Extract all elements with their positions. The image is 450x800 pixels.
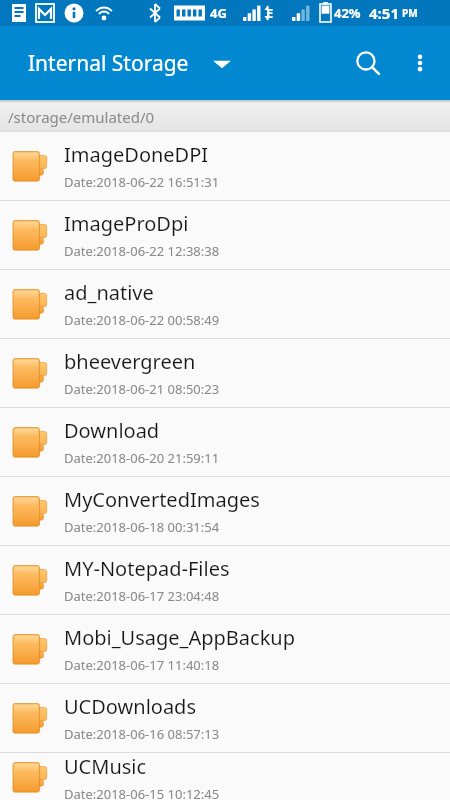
button[interactable]: bheevergreen xyxy=(0,339,450,407)
staticText: Date:2018-06-17 23:04:48 xyxy=(64,587,220,605)
staticText: bheevergreen xyxy=(64,348,196,375)
staticText: Date:2018-06-15 10:12:45 xyxy=(64,785,220,800)
staticText: Date:2018-06-21 08:50:23 xyxy=(64,380,220,398)
staticText: MyConvertedImages xyxy=(64,486,260,513)
staticText: Date:2018-06-18 00:31:54 xyxy=(64,518,220,536)
staticText: E xyxy=(266,4,274,22)
button[interactable]: Download xyxy=(0,408,450,476)
button[interactable]: ad_native xyxy=(0,270,450,338)
button[interactable]: More options xyxy=(394,37,446,89)
staticText: Download xyxy=(64,417,160,444)
staticText: Date:2018-06-22 00:58:49 xyxy=(64,311,220,329)
staticText: Internal Storage xyxy=(28,49,189,78)
button[interactable]: MY-Notepad-Files xyxy=(0,546,450,614)
staticText: MY-Notepad-Files xyxy=(64,555,230,582)
staticText: Date:2018-06-22 12:38:38 xyxy=(64,242,220,260)
staticText: Date:2018-06-17 11:40:18 xyxy=(64,656,220,674)
staticText: ImageProDpi xyxy=(64,210,189,237)
button[interactable]: ImageProDpi xyxy=(0,201,450,269)
staticText: Date:2018-06-20 21:59:11 xyxy=(64,449,220,467)
button[interactable]: MyConvertedImages xyxy=(0,477,450,545)
button[interactable]: ImageDoneDPI xyxy=(0,132,450,200)
staticText: 4:51 xyxy=(369,3,399,23)
staticText: PM xyxy=(402,6,418,20)
staticText: 42% xyxy=(334,4,361,22)
staticText: Date:2018-06-22 16:51:31 xyxy=(64,173,220,191)
staticText: 4G xyxy=(210,4,227,22)
staticText: UCDownloads xyxy=(64,693,196,720)
staticText: UCMusic xyxy=(64,753,147,780)
button[interactable]: UCDownloads xyxy=(0,684,450,752)
button[interactable]: /storage/emulated/0 xyxy=(0,100,450,131)
button[interactable]: UCMusic xyxy=(0,753,450,800)
button[interactable]: Internal Storage xyxy=(0,41,245,86)
staticText: /storage/emulated/0 xyxy=(8,107,155,127)
staticText: Date:2018-06-16 08:57:13 xyxy=(64,725,220,743)
staticText: ImageDoneDPI xyxy=(64,141,209,168)
staticText: Mobi_Usage_AppBackup xyxy=(64,624,295,651)
staticText: ad_native xyxy=(64,279,154,306)
button[interactable]: Mobi_Usage_AppBackup xyxy=(0,615,450,683)
button[interactable]: Search xyxy=(342,37,394,89)
